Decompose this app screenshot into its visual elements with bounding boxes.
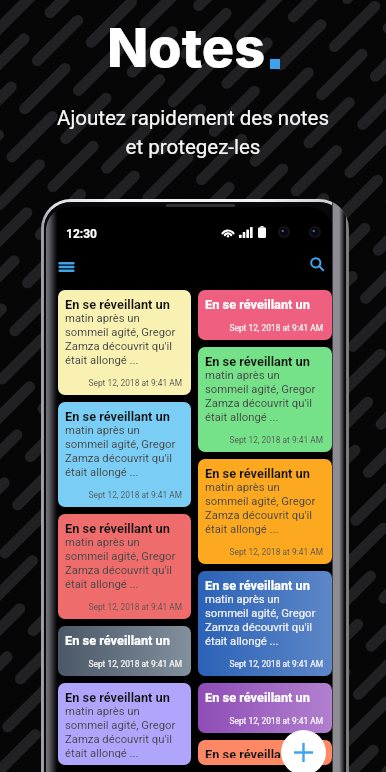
button[interactable]: En se réveillant un — [198, 290, 332, 340]
staticText: matin après un sommeil agité, Gregor Zam… — [205, 481, 316, 535]
staticText: Sept 12, 2018 at 9:41 AM — [65, 602, 182, 612]
staticText: Sept 12, 2018 at 9:41 AM — [205, 323, 323, 333]
button[interactable]: En se réveillant un — [58, 683, 191, 765]
staticText: Sept 12, 2018 at 9:41 AM — [205, 547, 323, 557]
staticText: En se réveillant un — [65, 521, 170, 536]
staticText: En se réveillant un — [205, 354, 310, 369]
staticText: Sept 12, 2018 at 9:41 AM — [65, 490, 182, 500]
staticText: matin après un sommeil agité, Gregor Zam… — [65, 424, 176, 478]
staticText: matin après un sommeil agité, Gregor Zam… — [65, 536, 176, 590]
staticText: En se réveillant un — [65, 633, 170, 648]
staticText: matin après un sommeil agité, Gregor Zam… — [65, 312, 176, 366]
button[interactable]: En se réveillant un — [198, 459, 332, 564]
staticText: matin après un sommeil agité, Gregor Zam… — [65, 705, 176, 758]
staticText: En se réveillant un — [205, 466, 310, 481]
staticText: matin après un sommeil agité, Gregor Zam… — [205, 369, 316, 423]
staticText: En se réveillant un — [205, 578, 310, 593]
staticText: En se réveillant un — [65, 297, 170, 312]
button[interactable]: En se réveillant un — [198, 571, 332, 676]
staticText: En se réveillant un — [205, 297, 310, 312]
button[interactable]: Add note — [281, 730, 326, 772]
button[interactable]: Menu — [50, 251, 82, 283]
button[interactable]: En se réveillant un — [58, 290, 191, 395]
staticText: En se réveillant un — [205, 690, 310, 705]
staticText: matin après un sommeil agité, Gregor Zam… — [205, 593, 316, 647]
staticText: Ajoutez rapidement des notes et protegez… — [0, 106, 386, 159]
staticText: 12:30 — [66, 227, 97, 241]
staticText: Notes — [107, 15, 266, 80]
staticText: Sept 12, 2018 at 9:41 AM — [205, 716, 323, 726]
staticText: Sept 12, 2018 at 9:41 AM — [65, 378, 182, 388]
staticText: Sept 12, 2018 at 9:41 AM — [65, 659, 182, 669]
staticText: Sept 12, 2018 at 9:41 AM — [205, 435, 323, 445]
staticText: En se réveillant un — [65, 409, 170, 424]
button[interactable]: En se réveillant un — [58, 402, 191, 507]
button[interactable]: En se réveillant un — [198, 683, 332, 733]
button[interactable]: En se réveillant un — [58, 514, 191, 619]
button[interactable]: En se réveillant un — [58, 626, 191, 676]
staticText: En se réveillant un — [205, 747, 310, 758]
button[interactable]: En se réveillant un — [198, 740, 332, 765]
staticText: En se réveillant un — [65, 690, 170, 705]
button[interactable]: Search — [301, 248, 332, 280]
staticText: Sept 12, 2018 at 9:41 AM — [205, 659, 323, 669]
button[interactable]: En se réveillant un — [198, 347, 332, 452]
